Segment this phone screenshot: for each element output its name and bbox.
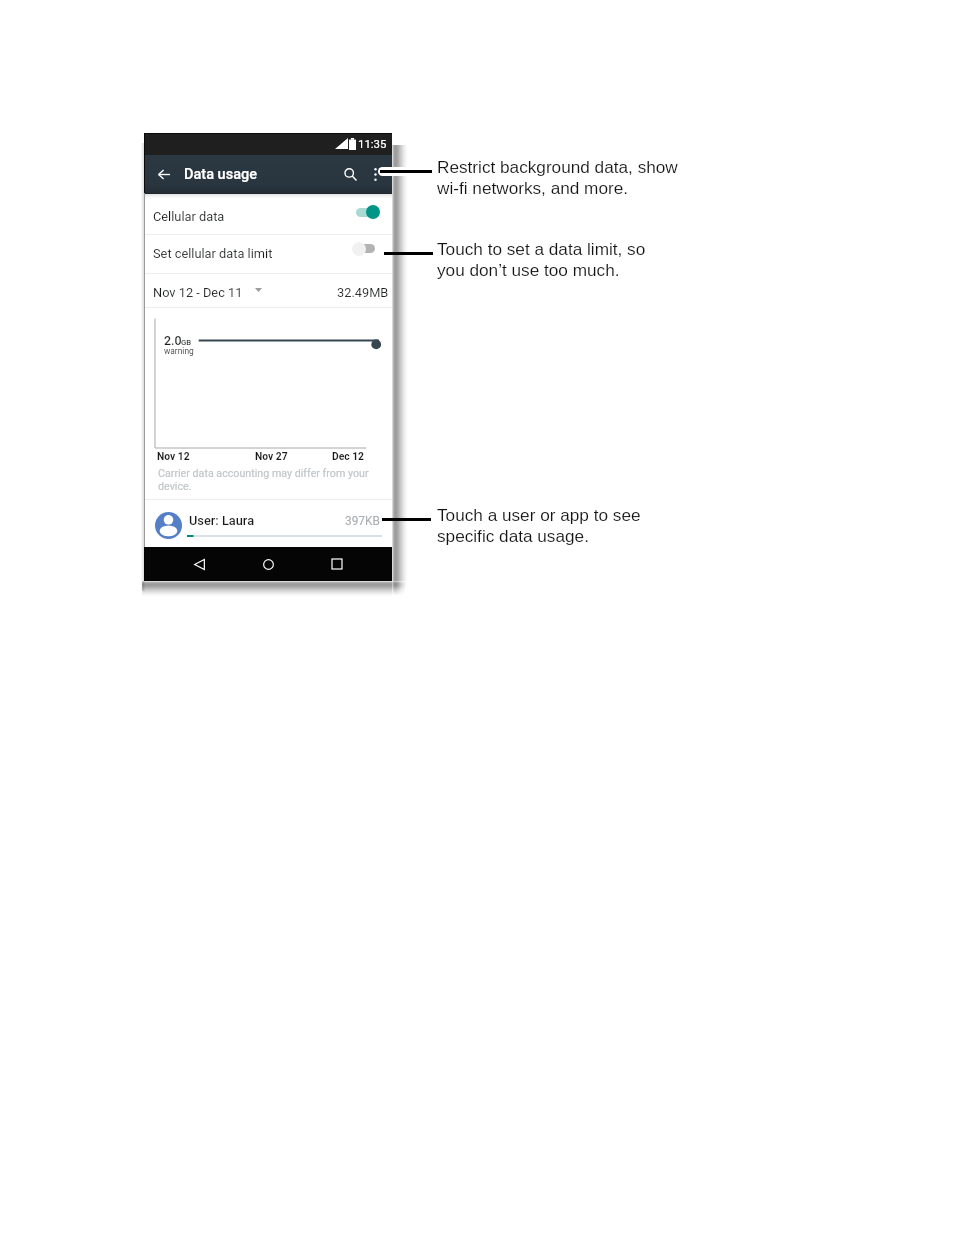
staticText: 2.0	[164, 333, 182, 348]
button[interactable]: Recents	[319, 546, 355, 582]
button[interactable]: More options	[364, 163, 386, 185]
staticText: Restrict background data, show wi-fi net…	[437, 157, 678, 197]
staticText: Cellular data	[153, 209, 225, 224]
button[interactable]: Back	[181, 546, 217, 582]
staticText: User: Laura	[189, 513, 255, 528]
button[interactable]: Switch off	[349, 238, 385, 259]
button[interactable]: Home	[250, 546, 286, 582]
staticText: 397KB	[345, 514, 380, 528]
staticText: Nov 12 - Dec 11	[153, 285, 243, 300]
staticText: Touch to set a data limit, so you don’t …	[437, 239, 646, 279]
button[interactable]: Set cellular data limit	[144, 234, 392, 274]
staticText: 11:35	[358, 137, 387, 150]
staticText: warning	[164, 346, 194, 356]
button[interactable]: Switch on	[349, 202, 385, 223]
button[interactable]: Cellular data	[144, 193, 392, 233]
staticText: Nov 27	[255, 450, 288, 462]
button[interactable]: Nov 12 - Dec 11 billing cycle, 32.49MB u…	[144, 273, 392, 307]
button[interactable]: Back	[152, 162, 176, 186]
staticText: Touch a user or app to see specific data…	[437, 505, 641, 545]
staticText: Set cellular data limit	[153, 246, 273, 261]
button[interactable]: Search	[338, 162, 362, 186]
button[interactable]: User: Laura, 397KB	[144, 499, 392, 547]
staticText: Nov 12	[157, 450, 190, 462]
staticText: Carrier data accounting may differ from …	[158, 467, 374, 493]
staticText: Data usage	[184, 166, 258, 183]
staticText: 32.49MB	[337, 285, 389, 300]
staticText: Dec 12	[332, 450, 365, 462]
staticText: GB	[181, 338, 192, 347]
